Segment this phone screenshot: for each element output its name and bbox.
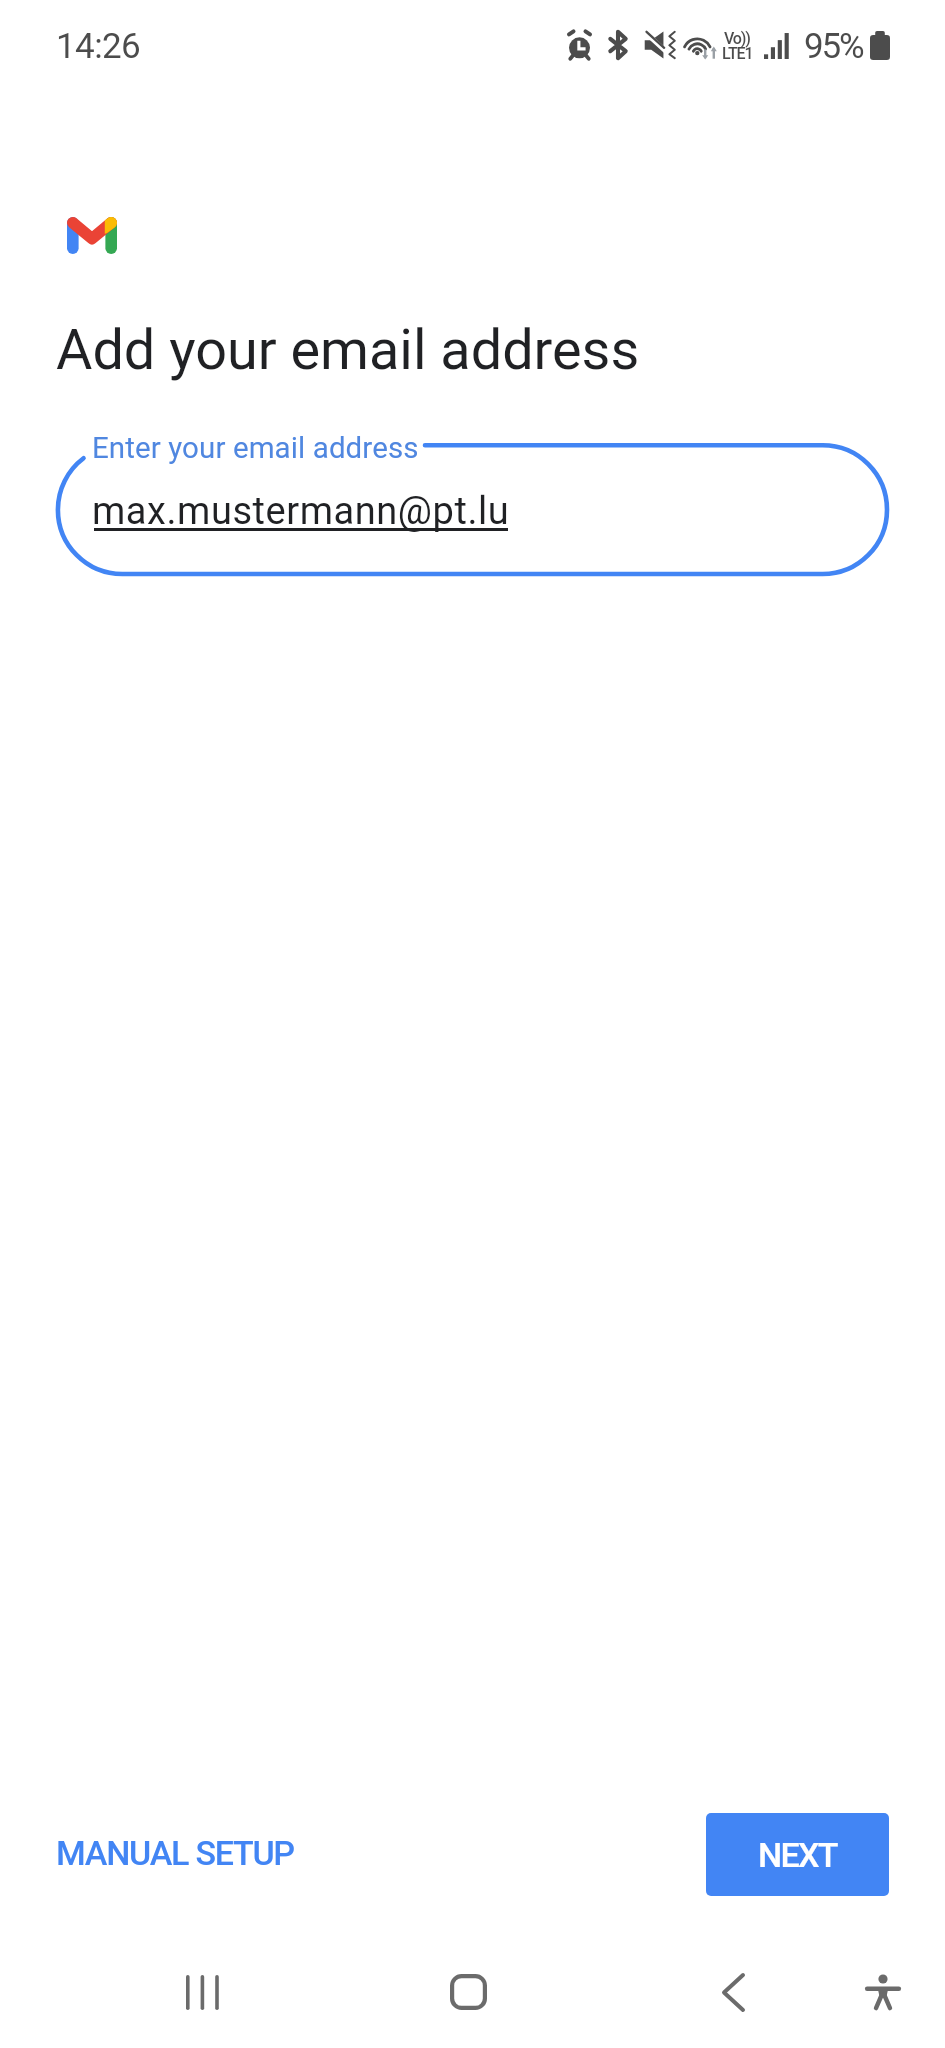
other: Wi-Fi — [680, 30, 718, 60]
button[interactable]: NEXT — [706, 1813, 889, 1896]
other: Battery — [870, 31, 890, 60]
staticText: NEXT — [758, 1835, 837, 1875]
staticText: Add your email address — [56, 317, 640, 382]
staticText: Vo)) — [724, 29, 750, 48]
button[interactable]: Accessibility — [848, 1956, 918, 2028]
button[interactable]: Home — [423, 1956, 513, 2028]
other: Alarm — [567, 31, 592, 59]
button[interactable]: Recent apps — [158, 1956, 250, 2028]
staticText: LTE1 — [722, 44, 753, 63]
button[interactable]: Enter your email address — [40, 430, 920, 590]
staticText: Enter your email address — [92, 431, 419, 466]
button[interactable]: Back — [688, 1956, 778, 2028]
staticText: max.mustermann@pt.lu — [92, 489, 510, 534]
staticText: MANUAL SETUP — [56, 1833, 294, 1873]
staticText: 95% — [804, 26, 863, 67]
staticText: 14:26 — [56, 26, 141, 67]
other: Sound off — [644, 31, 680, 59]
button[interactable]: MANUAL SETUP — [40, 1816, 310, 1890]
other: Bluetooth — [606, 31, 630, 59]
other: Signal strength — [764, 33, 789, 59]
